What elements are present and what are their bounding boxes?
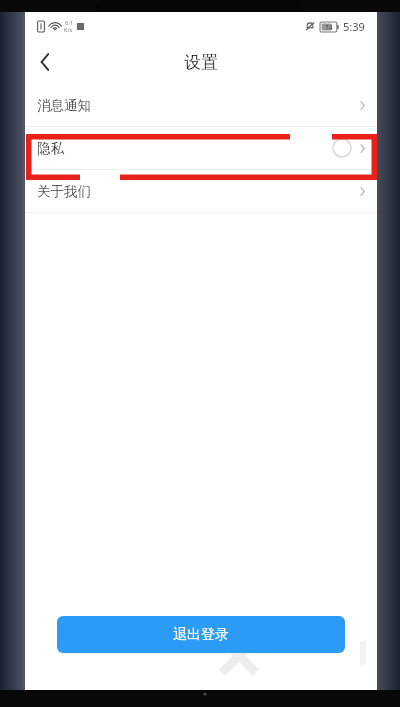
button[interactable]: Back [25, 42, 65, 82]
staticText: 关于我们 [37, 183, 91, 200]
button[interactable]: 退出登录 [57, 616, 345, 653]
button[interactable]: 消息通知 [25, 84, 377, 126]
staticText: 74 [325, 23, 333, 32]
staticText: 6.1 [65, 19, 73, 26]
staticText: 退出登录 [173, 626, 229, 644]
staticText: K/s [64, 26, 73, 33]
staticText: 5:39 [343, 19, 365, 34]
staticText: 消息通知 [37, 97, 91, 114]
button[interactable]: 隐私 [25, 127, 377, 169]
button[interactable]: 关于我们 [25, 170, 377, 212]
staticText: 设置 [184, 52, 218, 73]
staticText: 隐私 [37, 140, 64, 157]
